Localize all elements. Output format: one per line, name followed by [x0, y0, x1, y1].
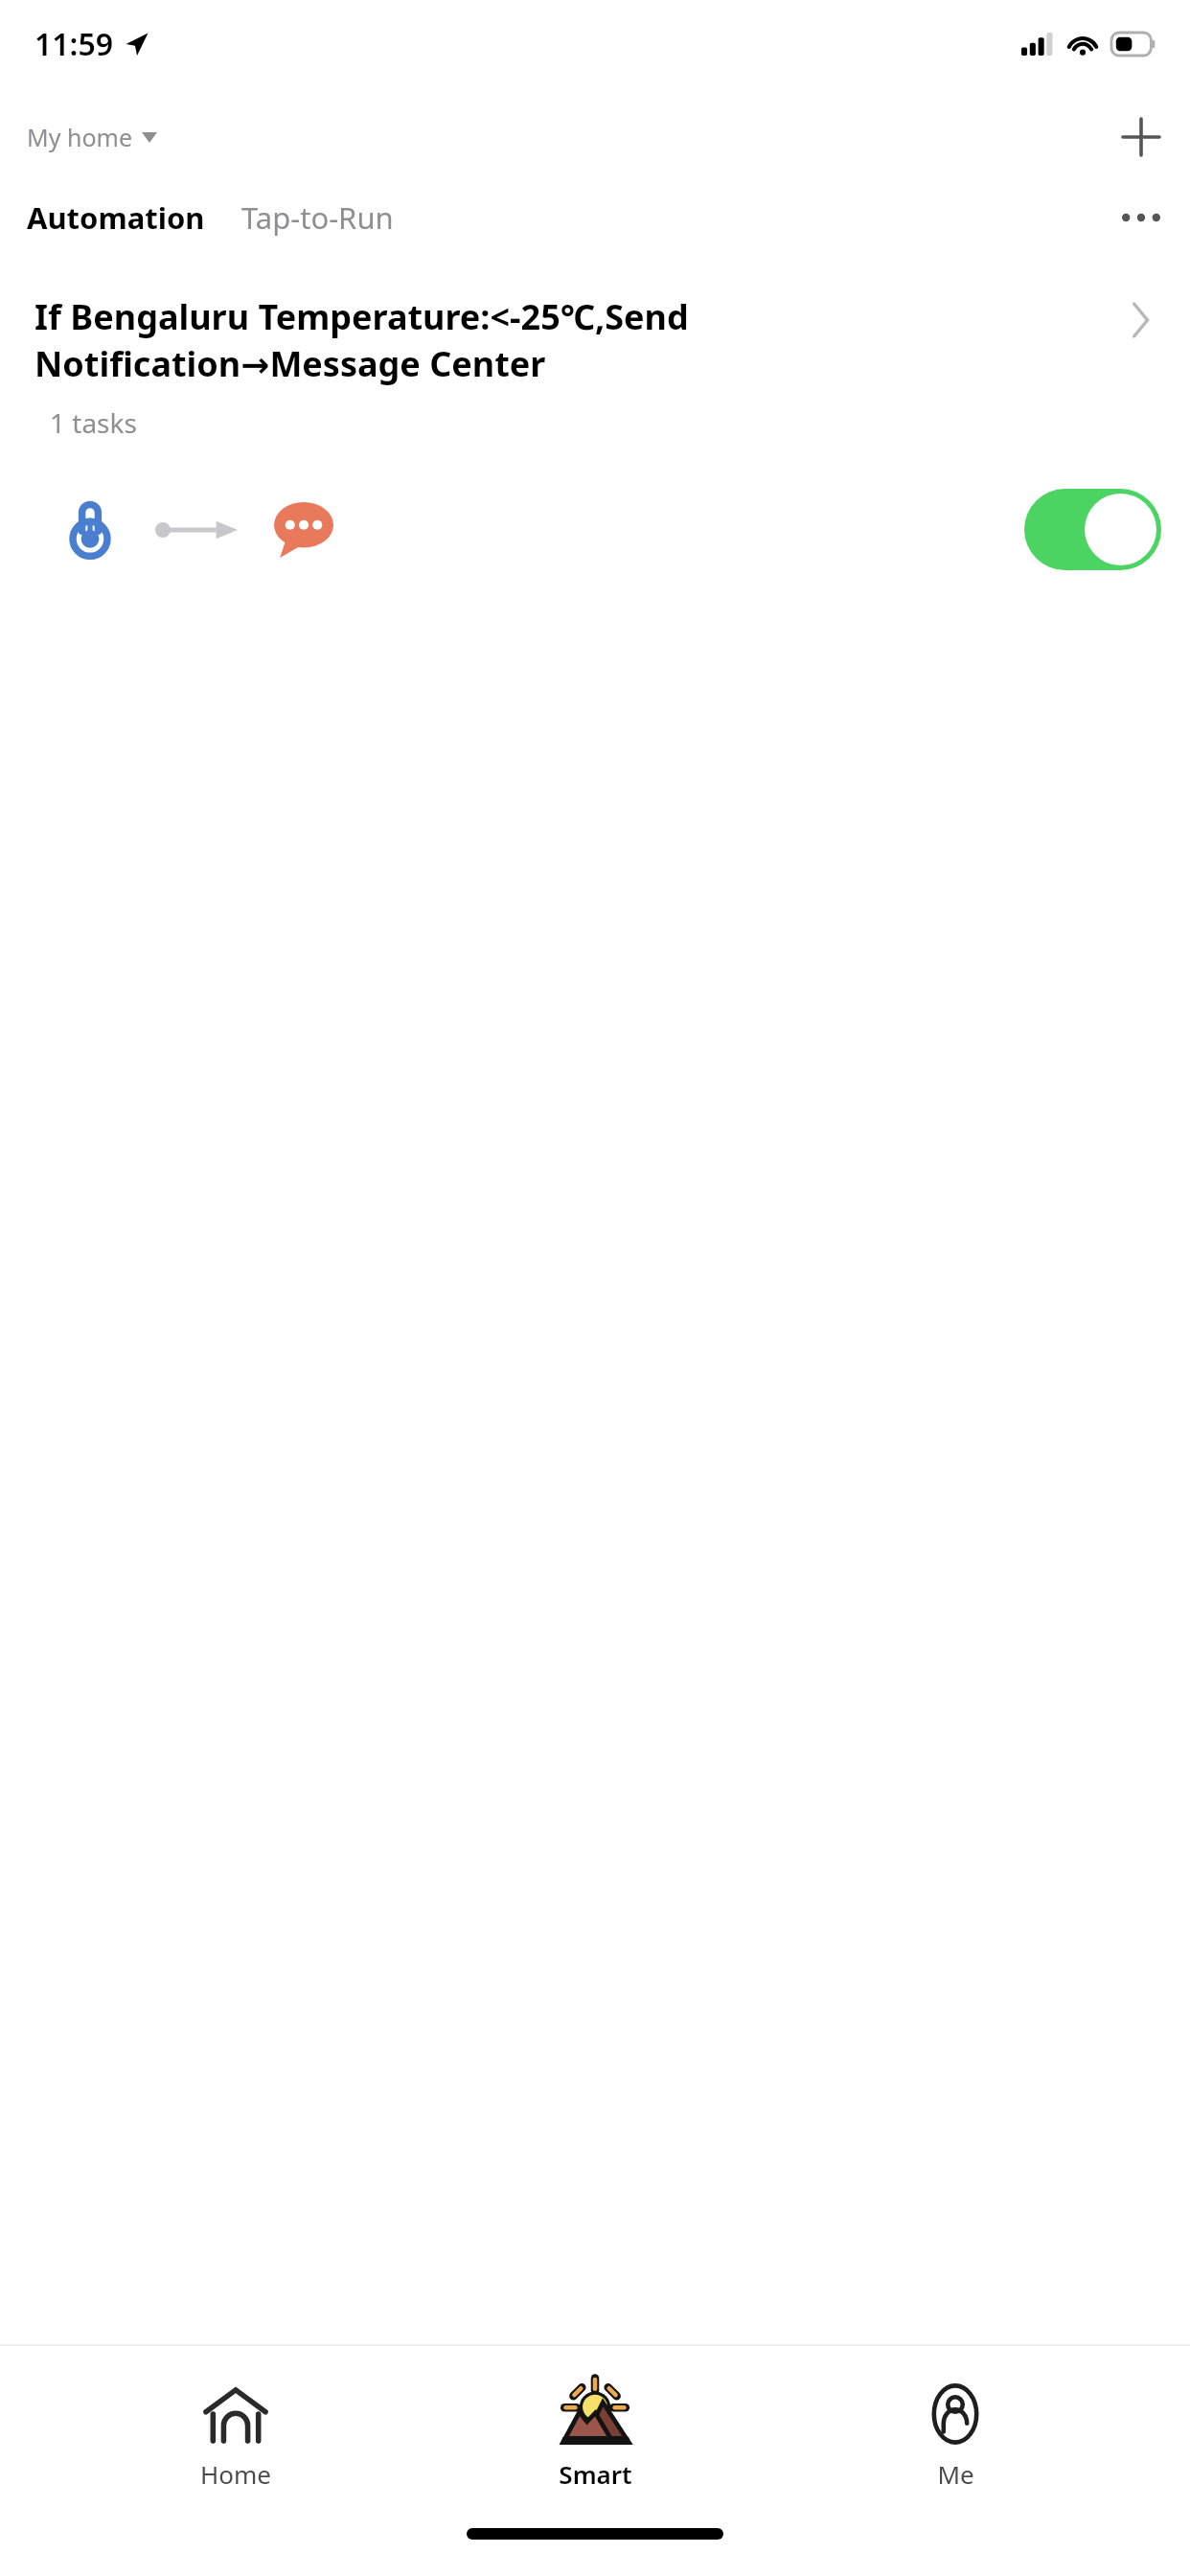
staticText: Tap-to-Run [241, 197, 394, 238]
button[interactable]: Smart [470, 2373, 720, 2496]
button[interactable]: Automation enabled [1024, 489, 1161, 570]
button[interactable]: My home [23, 115, 161, 159]
staticText: 1 tasks [50, 404, 137, 441]
button[interactable]: Home [111, 2373, 360, 2496]
staticText: If Bengaluru Temperature:<-25℃,Send Noti… [34, 293, 1108, 387]
button[interactable]: More options [1113, 190, 1169, 245]
staticText: Me [937, 2457, 974, 2491]
staticText: Smart [559, 2457, 632, 2491]
button[interactable]: If Bengaluru Temperature:<-25℃,Send Noti… [0, 293, 1190, 570]
staticText: My home [27, 121, 132, 153]
button[interactable]: Tap-to-Run [236, 190, 400, 245]
button[interactable]: Automation [21, 190, 211, 245]
staticText: 11:59 [34, 23, 114, 65]
staticText: Home [200, 2457, 271, 2491]
button[interactable]: Add [1113, 109, 1169, 165]
staticText: Automation [27, 197, 205, 238]
button[interactable]: Me [831, 2373, 1080, 2496]
